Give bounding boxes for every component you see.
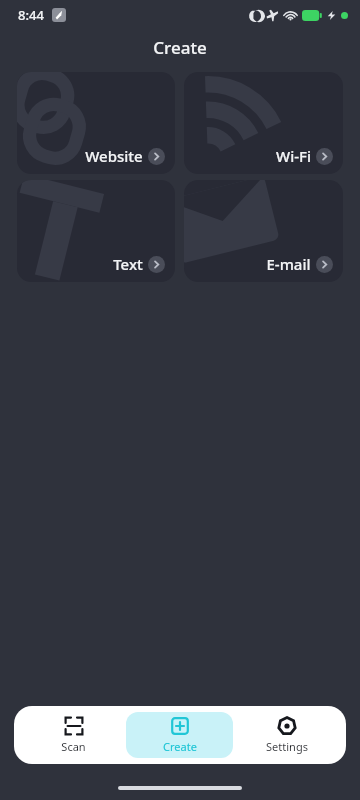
staticText: Website <box>85 146 143 166</box>
button[interactable]: Settings <box>233 712 340 758</box>
button[interactable]: Scan <box>20 712 126 758</box>
staticText: Create <box>163 739 197 754</box>
button[interactable]: Wi-Fi <box>184 72 343 174</box>
button[interactable]: E-mail <box>184 180 343 282</box>
button[interactable]: Text <box>17 180 175 282</box>
staticText: Settings <box>266 739 308 754</box>
button[interactable]: Website <box>17 72 175 174</box>
staticText: 8:44 <box>18 6 44 24</box>
staticText: Create <box>153 36 207 59</box>
button[interactable]: Create <box>126 712 233 758</box>
staticText: Text <box>113 254 143 274</box>
staticText: Wi-Fi <box>276 146 311 166</box>
staticText: E-mail <box>266 254 311 274</box>
staticText: Scan <box>61 739 86 754</box>
